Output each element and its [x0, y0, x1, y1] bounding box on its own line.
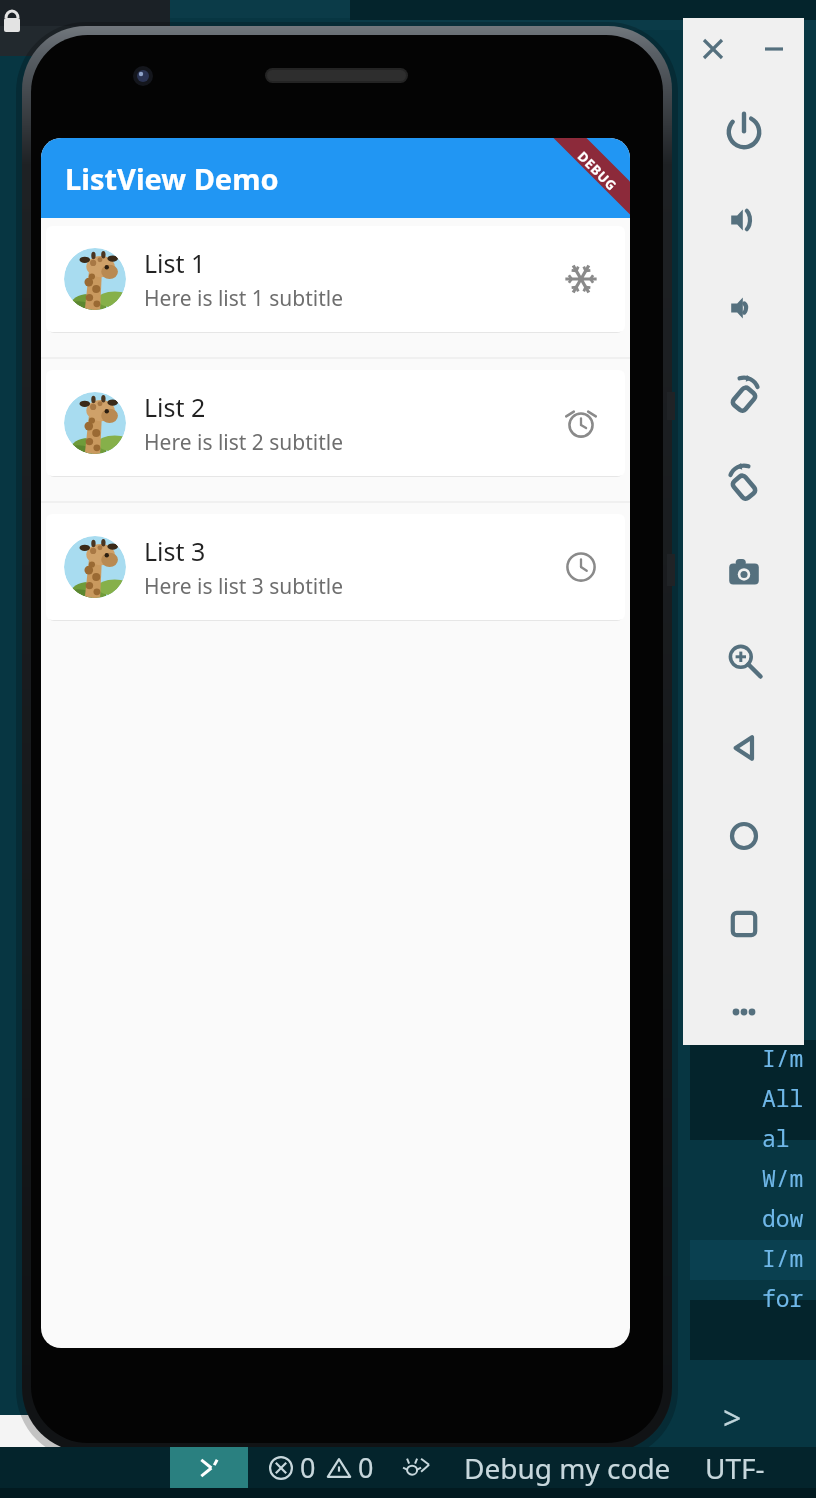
staticText: al — [762, 1122, 790, 1153]
staticText: Here is list 1 subtitle — [144, 284, 344, 313]
staticText: ListView Demo — [65, 159, 279, 198]
button[interactable]: Expand console — [710, 1396, 754, 1440]
button[interactable]: List 3 — [46, 514, 625, 620]
staticText: > — [723, 1396, 742, 1440]
staticText: 0 — [358, 1449, 374, 1486]
staticText: UTF- — [705, 1449, 765, 1487]
button[interactable]: Volume down — [683, 264, 804, 352]
button[interactable]: Power — [683, 88, 804, 176]
button[interactable]: Alarm — [555, 397, 607, 449]
staticText: Here is list 2 subtitle — [144, 428, 344, 457]
staticText: Here is list 3 subtitle — [144, 572, 344, 601]
staticText: All — [762, 1082, 804, 1113]
staticText: W/m — [762, 1162, 804, 1193]
button[interactable]: List 2 — [46, 370, 625, 476]
button[interactable]: Debug my code — [464, 1449, 671, 1487]
button[interactable]: Minimize — [743, 18, 804, 80]
staticText: Debug my code — [464, 1449, 671, 1487]
button[interactable]: List 1 — [46, 226, 625, 332]
button[interactable]: Rotate left — [683, 352, 804, 440]
button[interactable]: Clock — [555, 541, 607, 593]
button[interactable]: Back — [683, 704, 804, 792]
staticText: List 3 — [144, 534, 206, 568]
button[interactable]: Snow mode — [555, 253, 607, 305]
button[interactable]: Zoom — [683, 616, 804, 704]
button[interactable]: Close — [683, 18, 743, 80]
staticText: for — [762, 1282, 804, 1313]
staticText: I/m — [762, 1242, 804, 1273]
button[interactable]: Overview — [683, 880, 804, 968]
button[interactable]: Screenshot — [683, 528, 804, 616]
button[interactable]: Home — [683, 792, 804, 880]
staticText: List 1 — [144, 246, 206, 280]
button[interactable]: More — [683, 968, 804, 1056]
button[interactable]: Terminal — [170, 1447, 248, 1488]
staticText: DEBUG — [574, 147, 621, 195]
button[interactable]: Rotate right — [683, 440, 804, 528]
staticText: I/m — [762, 1042, 804, 1073]
button[interactable]: Volume up — [683, 176, 804, 264]
staticText: List 2 — [144, 390, 206, 424]
staticText: 0 — [300, 1449, 316, 1486]
staticText: dow — [762, 1202, 804, 1233]
